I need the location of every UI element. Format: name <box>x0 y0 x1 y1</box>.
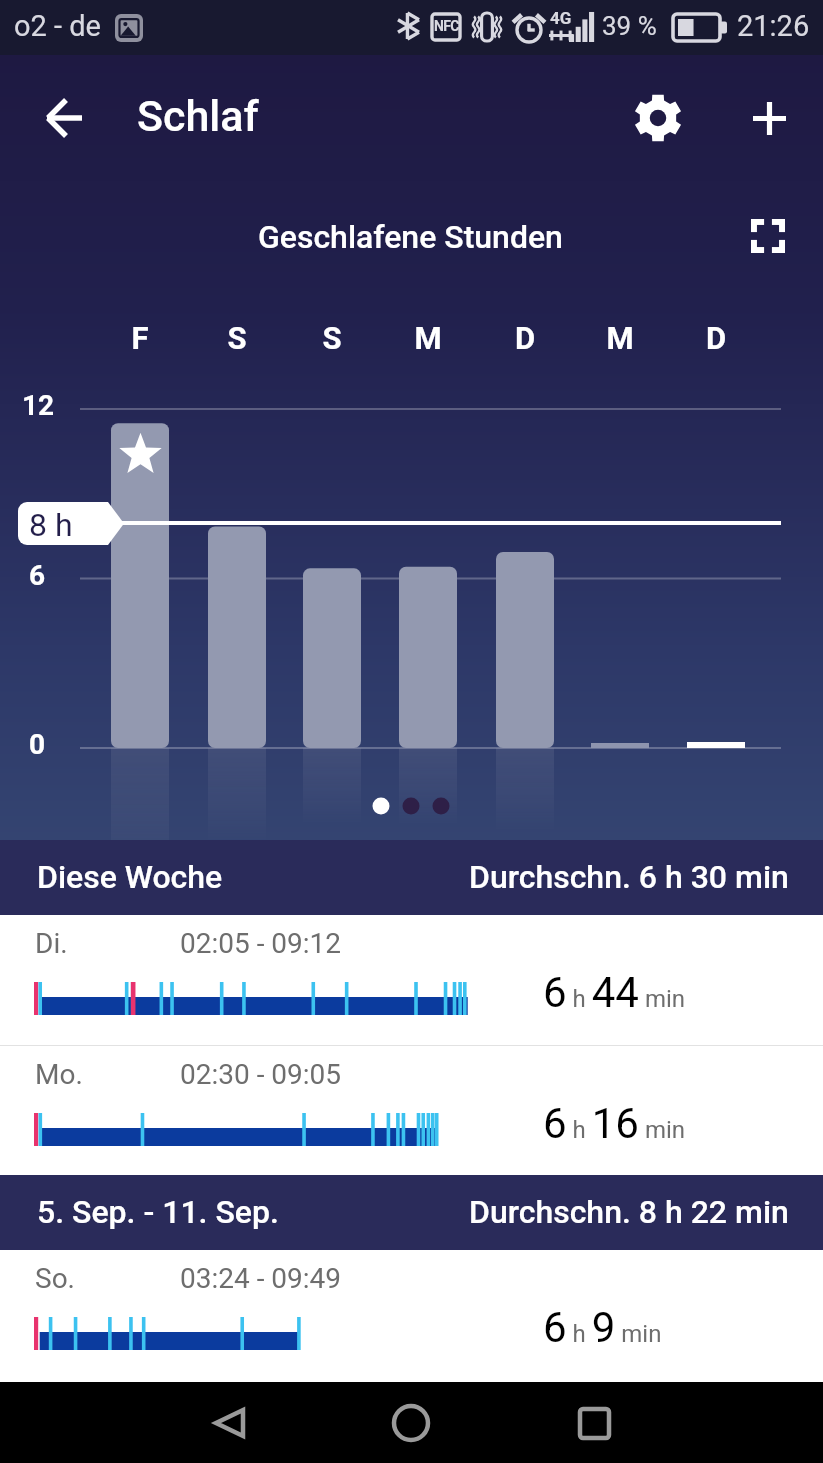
staticText: NFC <box>434 18 459 34</box>
staticText: 21:26 <box>737 9 810 43</box>
staticText: Durchschn. 6 h 30 min <box>469 858 789 896</box>
staticText: 6 <box>29 559 46 592</box>
staticText: D <box>696 320 736 356</box>
staticText: F <box>120 320 160 356</box>
staticText: Mo. <box>35 1058 83 1091</box>
staticText: M <box>600 320 640 356</box>
staticText: 6 h 16 min <box>543 1099 686 1148</box>
button[interactable]: 5. Sep. - 11. Sep. <box>0 1175 823 1250</box>
staticText: Di. <box>35 927 68 960</box>
button[interactable]: So. <box>0 1250 823 1382</box>
staticText: Durchschn. 8 h 22 min <box>469 1193 789 1231</box>
staticText: o2 - de <box>14 9 101 43</box>
staticText: 8 h <box>29 506 73 544</box>
staticText: S <box>217 320 257 356</box>
button[interactable]: Diese Woche <box>0 840 823 915</box>
staticText: M <box>408 320 448 356</box>
staticText: 12 <box>22 389 55 422</box>
staticText: Diese Woche <box>37 858 223 896</box>
staticText: 5. Sep. - 11. Sep. <box>37 1193 279 1231</box>
staticText: 02:30 - 09:05 <box>180 1058 342 1091</box>
staticText: 03:24 - 09:49 <box>180 1262 342 1295</box>
staticText: 6 h 9 min <box>543 1303 662 1352</box>
button[interactable]: Fullscreen <box>738 206 798 266</box>
staticText: 39 % <box>602 11 657 41</box>
staticText: D <box>505 320 545 356</box>
button[interactable]: Di. <box>0 915 823 1045</box>
staticText: 4G <box>550 8 572 28</box>
button[interactable]: Back <box>195 1388 265 1458</box>
staticText: 6 h 44 min <box>543 968 686 1017</box>
staticText: Geschlafene Stunden <box>258 218 563 256</box>
button[interactable]: Recents <box>559 1388 629 1458</box>
button[interactable]: Settings <box>620 80 696 156</box>
staticText: Schlaf <box>137 91 259 141</box>
button[interactable]: Add <box>731 80 807 156</box>
staticText: So. <box>35 1262 75 1295</box>
button[interactable]: Home <box>376 1388 446 1458</box>
staticText: S <box>312 320 352 356</box>
staticText: 02:05 - 09:12 <box>180 927 342 960</box>
staticText: 0 <box>29 728 46 761</box>
button[interactable]: Mo. <box>0 1046 823 1175</box>
button[interactable]: Back <box>26 80 102 156</box>
